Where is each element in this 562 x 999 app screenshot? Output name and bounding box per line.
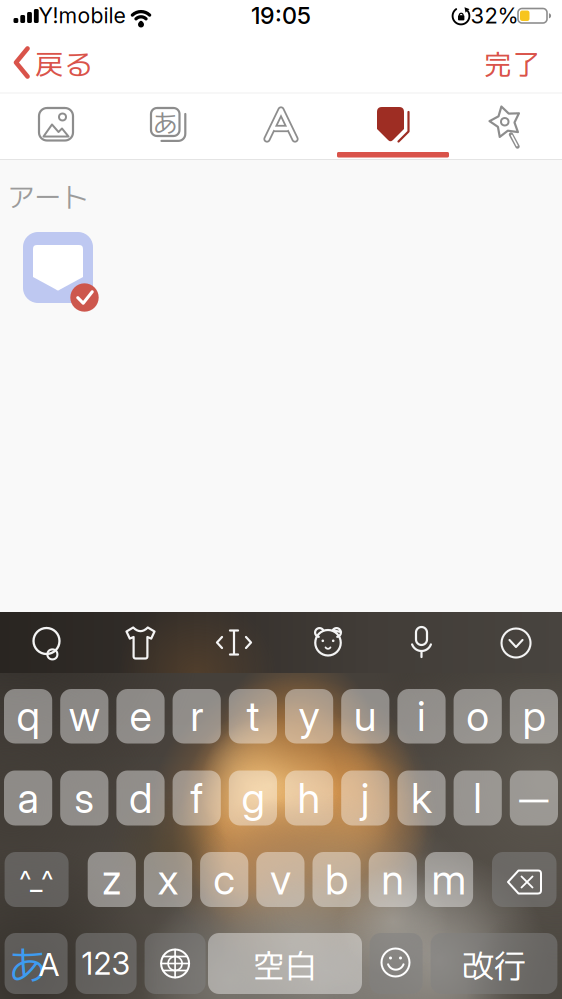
staticText: d bbox=[129, 773, 152, 823]
staticText: n bbox=[381, 854, 404, 904]
staticText: g bbox=[241, 773, 264, 823]
staticText: i bbox=[417, 691, 426, 741]
staticText: k bbox=[411, 773, 432, 823]
staticText: v bbox=[270, 854, 291, 904]
staticText: ー bbox=[516, 772, 552, 824]
staticText: j bbox=[361, 773, 370, 823]
staticText: c bbox=[213, 854, 235, 904]
staticText: 戻る bbox=[35, 42, 93, 83]
staticText: y bbox=[299, 691, 320, 741]
staticText: p bbox=[522, 691, 545, 741]
staticText: s bbox=[74, 773, 94, 823]
staticText: h bbox=[298, 773, 321, 823]
staticText: あ bbox=[8, 935, 47, 991]
staticText: b bbox=[325, 854, 348, 904]
staticText: 空白 bbox=[253, 940, 317, 987]
staticText: m bbox=[431, 854, 466, 904]
staticText: Y!mobile bbox=[38, 3, 125, 28]
staticText: u bbox=[354, 691, 377, 741]
staticText: A bbox=[38, 945, 59, 983]
staticText: l bbox=[473, 773, 482, 823]
staticText: 完了 bbox=[484, 42, 540, 83]
staticText: 123 bbox=[82, 945, 131, 982]
staticText: 32% bbox=[470, 2, 518, 29]
staticText: r bbox=[190, 691, 203, 741]
staticText: w bbox=[69, 691, 100, 741]
staticText: 19:05 bbox=[251, 1, 311, 30]
staticText: q bbox=[17, 691, 40, 741]
staticText: z bbox=[102, 854, 122, 904]
staticText: f bbox=[190, 773, 203, 823]
staticText: あ bbox=[153, 103, 178, 140]
staticText: a bbox=[18, 773, 39, 823]
staticText: ^_^ bbox=[19, 863, 54, 897]
staticText: o bbox=[466, 691, 489, 741]
staticText: e bbox=[129, 691, 151, 741]
staticText: t bbox=[246, 691, 259, 741]
staticText: x bbox=[157, 854, 178, 904]
staticText: 改行 bbox=[462, 940, 526, 987]
staticText: アート bbox=[7, 176, 88, 214]
